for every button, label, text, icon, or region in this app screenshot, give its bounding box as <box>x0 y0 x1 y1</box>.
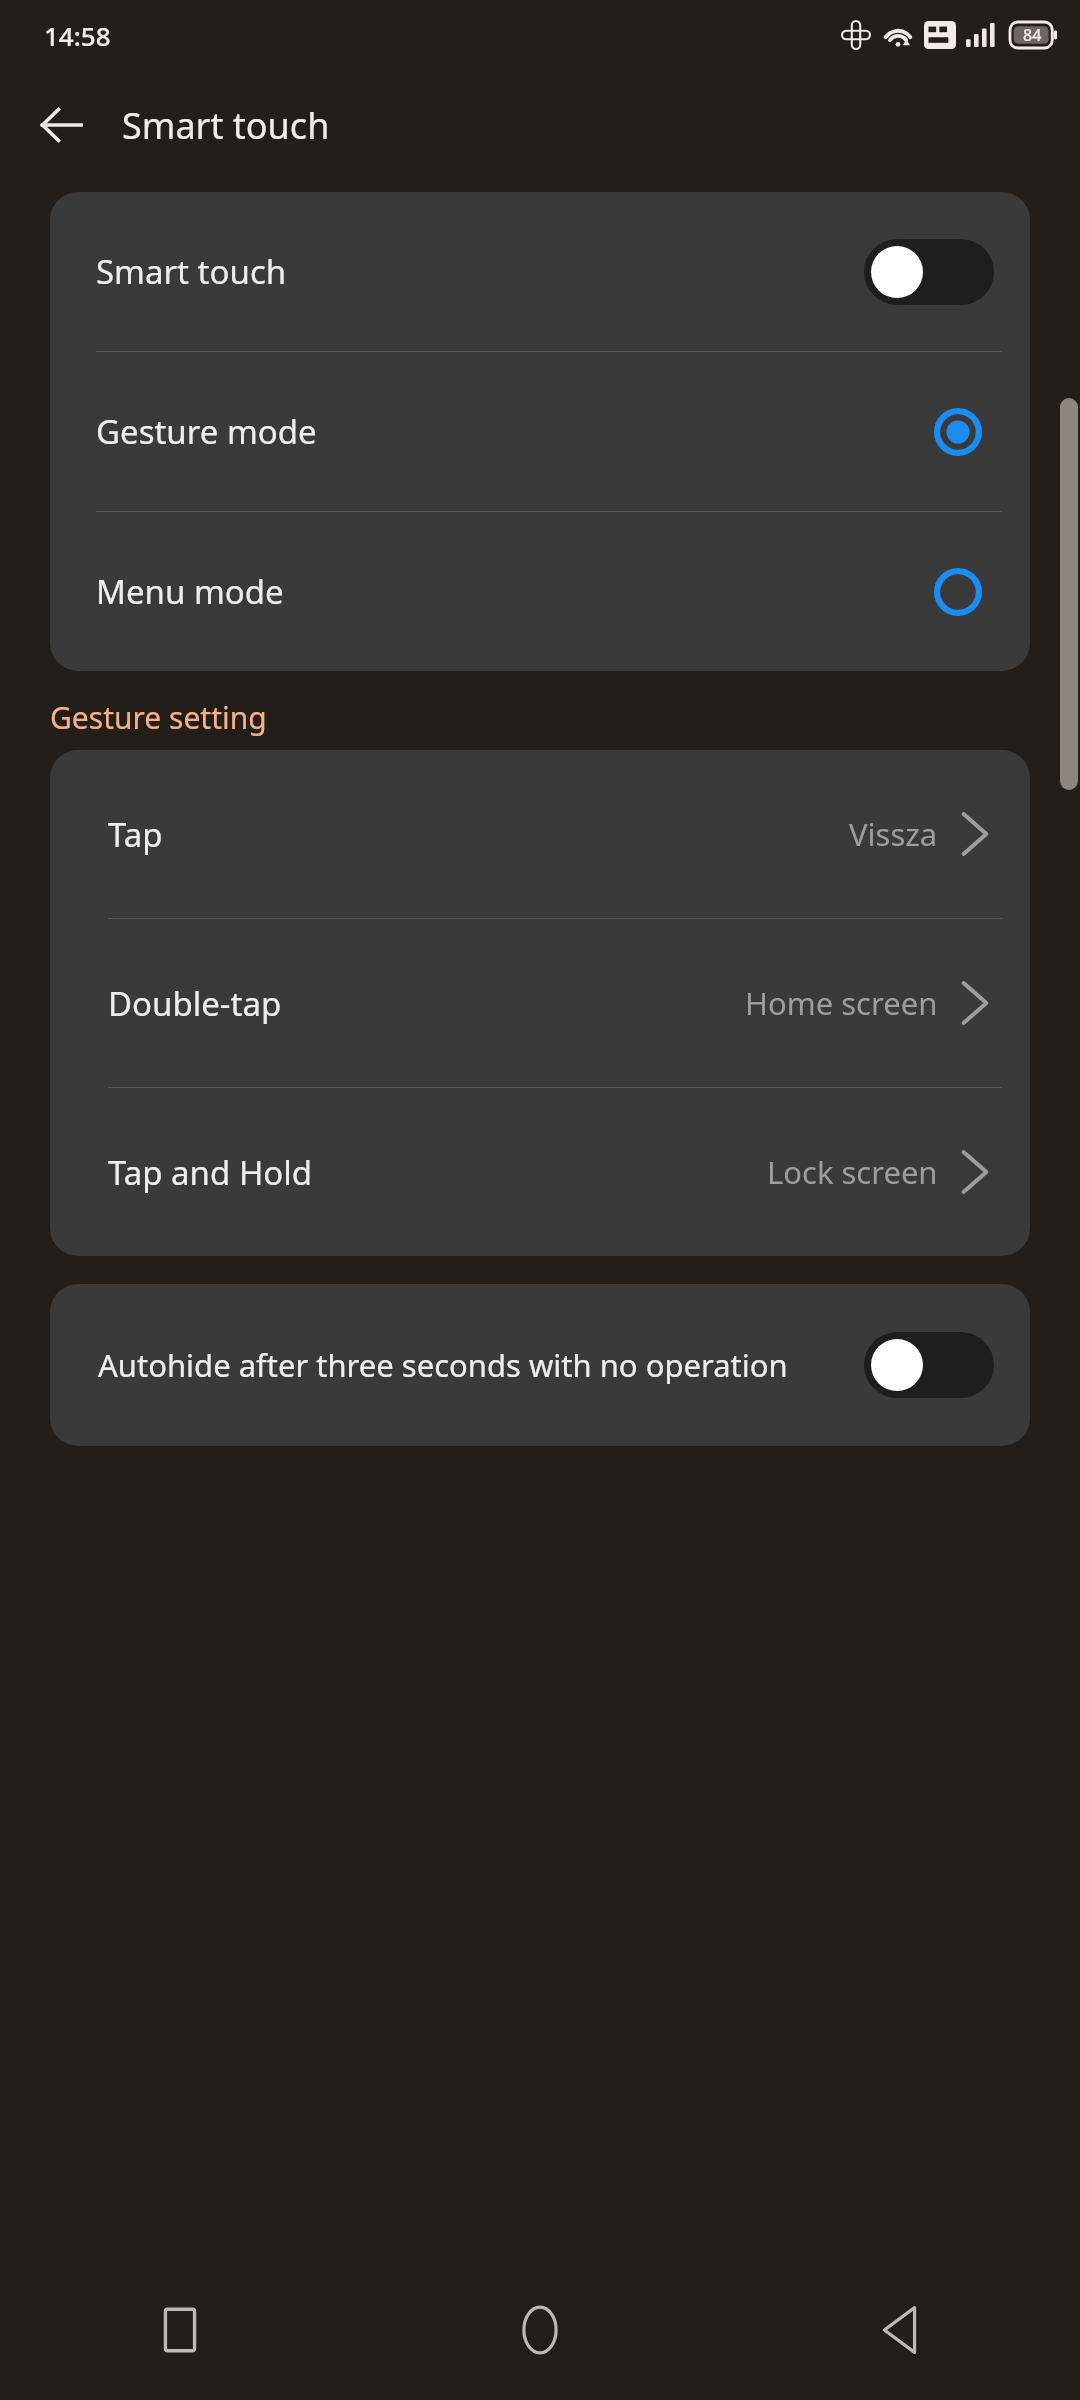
button[interactable]: Smart touch <box>50 192 1030 351</box>
staticText: 84 <box>1023 24 1042 46</box>
button[interactable]: Recents <box>0 2260 360 2400</box>
staticText: 14:58 <box>44 18 111 53</box>
button[interactable]: Tap <box>50 750 1030 918</box>
staticText: Smart touch <box>96 249 864 294</box>
staticText: Double-tap <box>108 981 745 1026</box>
staticText: Lock screen <box>767 1151 938 1193</box>
staticText: Smart touch <box>122 101 330 150</box>
staticText: Autohide after three seconds with no ope… <box>98 1344 844 1386</box>
button[interactable]: Toggle <box>864 239 994 305</box>
button[interactable]: Double-tap <box>50 919 1030 1087</box>
button[interactable]: Back <box>720 2260 1080 2400</box>
button[interactable]: Autohide after three seconds with no ope… <box>50 1284 1030 1446</box>
staticText: Gesture setting <box>50 697 267 738</box>
staticText: Menu mode <box>96 569 934 614</box>
staticText: Gesture mode <box>96 409 934 454</box>
button[interactable]: Back <box>22 86 100 164</box>
staticText: Home screen <box>745 982 938 1024</box>
staticText: Tap and Hold <box>108 1150 767 1195</box>
button[interactable]: Tap and Hold <box>50 1088 1030 1256</box>
button[interactable]: Gesture mode <box>50 352 1030 511</box>
button[interactable]: Menu mode <box>50 512 1030 671</box>
button[interactable]: Home <box>360 2260 720 2400</box>
staticText: Vissza <box>849 813 938 855</box>
button[interactable]: Toggle <box>864 1332 994 1398</box>
staticText: Tap <box>108 812 849 857</box>
